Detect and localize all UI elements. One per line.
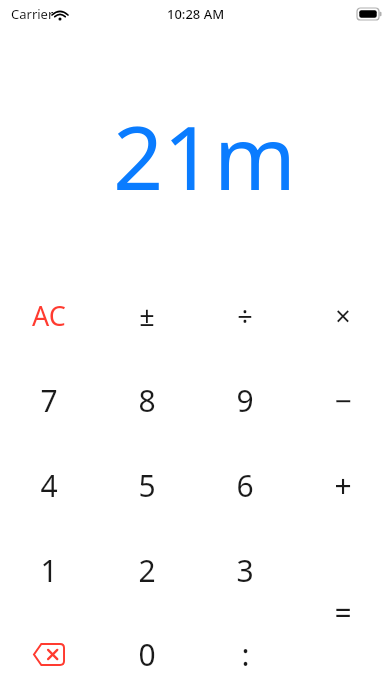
staticText: 0 (138, 634, 156, 675)
staticText: 3 (236, 550, 254, 591)
staticText: 5 (138, 465, 156, 506)
staticText: 10:28 AM (167, 5, 225, 23)
staticText: 21m 4s (113, 96, 392, 216)
button[interactable]: Backspace (0, 613, 98, 696)
button[interactable]: 6 (196, 443, 294, 528)
staticText: ± (139, 297, 155, 334)
button[interactable]: 3 (196, 528, 294, 613)
button[interactable]: : (196, 613, 294, 696)
staticText: ÷ (237, 297, 253, 334)
button[interactable]: − (294, 358, 392, 443)
button[interactable]: 0 (98, 613, 196, 696)
staticText: + (334, 465, 352, 506)
button[interactable]: AC (0, 273, 98, 358)
staticText: × (335, 297, 351, 334)
staticText: AC (32, 297, 66, 334)
staticText: 6 (236, 465, 254, 506)
staticText: 7 (40, 380, 58, 421)
button[interactable]: 5 (98, 443, 196, 528)
staticText: = (334, 592, 352, 633)
staticText: 4 (40, 465, 58, 506)
button[interactable]: = (294, 528, 392, 696)
button[interactable]: 7 (0, 358, 98, 443)
staticText: Carrier (11, 5, 54, 23)
button[interactable]: 8 (98, 358, 196, 443)
staticText: 1 (40, 550, 58, 591)
button[interactable]: + (294, 443, 392, 528)
staticText: 9 (236, 380, 254, 421)
staticText: − (334, 380, 352, 421)
button[interactable]: ± (98, 273, 196, 358)
button[interactable]: 1 (0, 528, 98, 613)
staticText: : (241, 634, 250, 675)
button[interactable]: ÷ (196, 273, 294, 358)
button[interactable]: 9 (196, 358, 294, 443)
button[interactable]: × (294, 273, 392, 358)
staticText: 2 (138, 550, 156, 591)
staticText: 8 (138, 380, 156, 421)
button[interactable]: 2 (98, 528, 196, 613)
button[interactable]: 4 (0, 443, 98, 528)
